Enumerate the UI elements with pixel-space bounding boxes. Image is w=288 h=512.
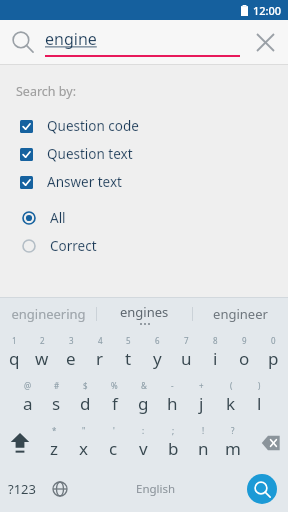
staticText: 6 bbox=[155, 335, 160, 346]
button[interactable]: English bbox=[76, 465, 236, 512]
staticText: ) bbox=[258, 380, 261, 391]
staticText: p bbox=[268, 347, 279, 370]
staticText: 0 bbox=[271, 335, 276, 346]
staticText: + bbox=[199, 380, 204, 391]
button[interactable]: 5 bbox=[114, 330, 143, 375]
button[interactable]: Correct bbox=[0, 232, 288, 260]
button[interactable]: engineer bbox=[193, 298, 288, 330]
button[interactable]: & bbox=[129, 375, 158, 420]
staticText: engines bbox=[120, 303, 169, 321]
staticText: 3 bbox=[69, 335, 74, 346]
staticText: t bbox=[125, 347, 132, 370]
button[interactable]: Search bbox=[247, 474, 277, 504]
staticText: English bbox=[136, 481, 176, 497]
button[interactable]: 8 bbox=[201, 330, 230, 375]
staticText: z bbox=[50, 437, 58, 460]
button[interactable]: Answer text bbox=[0, 168, 288, 196]
staticText: u bbox=[181, 347, 192, 370]
staticText: 1 bbox=[12, 335, 17, 346]
staticText: 2 bbox=[40, 335, 45, 346]
button[interactable]: + bbox=[187, 375, 216, 420]
button[interactable]: Search bbox=[10, 29, 36, 55]
staticText: All bbox=[50, 209, 66, 227]
staticText: q bbox=[9, 347, 20, 370]
staticText: a bbox=[23, 392, 33, 415]
button[interactable]: 0 bbox=[259, 330, 288, 375]
button[interactable]: * bbox=[39, 420, 68, 465]
staticText: Answer text bbox=[47, 173, 122, 191]
staticText: % bbox=[111, 380, 118, 391]
staticText: f bbox=[112, 392, 118, 415]
staticText: * bbox=[52, 425, 57, 436]
staticText: d bbox=[80, 392, 91, 415]
staticText: ' bbox=[113, 425, 115, 436]
button[interactable]: Question code bbox=[0, 112, 288, 140]
button[interactable]: 9 bbox=[230, 330, 259, 375]
staticText: j bbox=[199, 392, 204, 415]
staticText: ? bbox=[231, 425, 235, 436]
staticText: & bbox=[141, 380, 147, 391]
button[interactable]: Change language bbox=[44, 465, 76, 512]
staticText: # bbox=[54, 380, 60, 391]
button[interactable]: 1 bbox=[0, 330, 28, 375]
staticText: 7 bbox=[184, 335, 189, 346]
staticText: w bbox=[35, 347, 49, 370]
staticText: e bbox=[66, 347, 76, 370]
staticText: - bbox=[171, 380, 174, 391]
staticText: g bbox=[138, 392, 149, 415]
button[interactable]: 2 bbox=[28, 330, 56, 375]
button[interactable]: % bbox=[100, 375, 129, 420]
staticText: ( bbox=[230, 380, 233, 391]
button[interactable]: ; bbox=[158, 420, 188, 465]
button[interactable]: ) bbox=[245, 375, 274, 420]
staticText: engineer bbox=[213, 305, 268, 323]
button[interactable]: @ bbox=[14, 375, 42, 420]
button[interactable]: ?123 bbox=[0, 465, 44, 512]
staticText: l bbox=[257, 392, 262, 415]
staticText: y bbox=[153, 347, 162, 370]
button[interactable]: Shift bbox=[0, 420, 39, 465]
button[interactable]: 3 bbox=[56, 330, 85, 375]
button[interactable]: ? bbox=[218, 420, 248, 465]
staticText: Correct bbox=[50, 237, 97, 255]
staticText: k bbox=[226, 392, 236, 415]
button[interactable]: # bbox=[42, 375, 71, 420]
staticText: ; bbox=[172, 425, 175, 436]
button[interactable]: Question text bbox=[0, 140, 288, 168]
staticText: o bbox=[239, 347, 250, 370]
button[interactable]: : bbox=[128, 420, 158, 465]
staticText: r bbox=[96, 347, 104, 370]
button[interactable]: Clear bbox=[250, 27, 280, 57]
button[interactable]: engineering bbox=[0, 298, 96, 330]
button[interactable]: 4 bbox=[85, 330, 114, 375]
button[interactable]: ( bbox=[216, 375, 245, 420]
button[interactable]: - bbox=[158, 375, 187, 420]
button[interactable]: " bbox=[68, 420, 98, 465]
staticText: h bbox=[167, 392, 178, 415]
staticText: c bbox=[109, 437, 118, 460]
staticText: v bbox=[139, 437, 148, 460]
button[interactable]: ! bbox=[188, 420, 218, 465]
button[interactable]: Backspace bbox=[248, 420, 288, 465]
staticText: 9 bbox=[242, 335, 247, 346]
staticText: Question code bbox=[47, 117, 139, 135]
button[interactable]: 6 bbox=[143, 330, 172, 375]
staticText: b bbox=[168, 437, 179, 460]
staticText: engineering bbox=[11, 305, 86, 323]
button[interactable]: ' bbox=[98, 420, 128, 465]
staticText: 4 bbox=[98, 335, 103, 346]
staticText: engine bbox=[45, 28, 97, 50]
staticText: 5 bbox=[126, 335, 131, 346]
button[interactable]: 7 bbox=[172, 330, 201, 375]
staticText: $ bbox=[83, 380, 88, 391]
staticText: 12:00 bbox=[253, 3, 282, 18]
staticText: " bbox=[82, 425, 86, 436]
staticText: ! bbox=[202, 425, 205, 436]
staticText: s bbox=[52, 392, 61, 415]
staticText: : bbox=[142, 425, 145, 436]
staticText: n bbox=[198, 437, 209, 460]
button[interactable]: All bbox=[0, 204, 288, 232]
staticText: i bbox=[213, 347, 218, 370]
button[interactable]: $ bbox=[71, 375, 100, 420]
staticText: ?123 bbox=[8, 480, 36, 498]
